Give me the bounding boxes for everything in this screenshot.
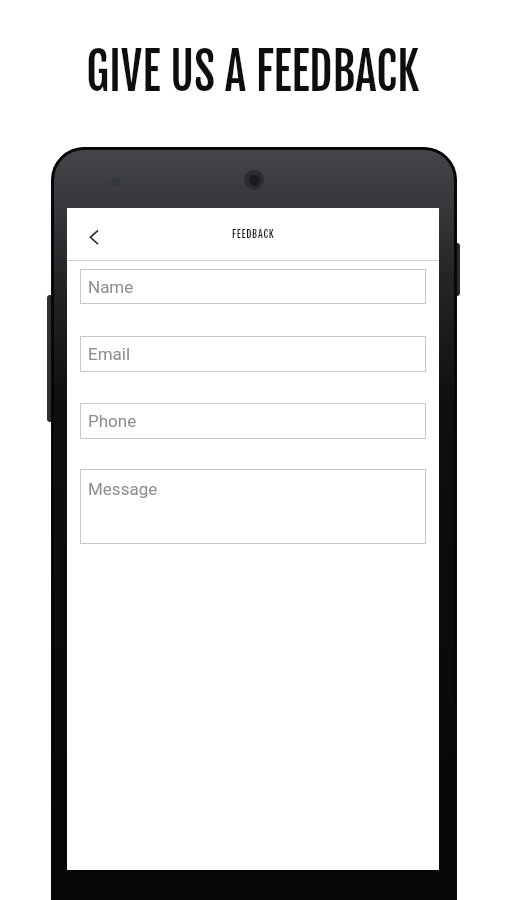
staticText: Email	[88, 344, 131, 364]
staticText: Phone	[88, 411, 137, 431]
button[interactable]: Email	[80, 336, 426, 372]
staticText: Message	[88, 479, 158, 499]
button[interactable]: Message	[80, 469, 426, 544]
button[interactable]: Phone	[80, 403, 426, 439]
staticText: FEEDBACK	[232, 228, 275, 241]
staticText: GIVE US A FEEDBACK	[86, 40, 420, 104]
button[interactable]	[75, 217, 115, 257]
staticText: Name	[88, 277, 134, 297]
button[interactable]: Name	[80, 269, 426, 304]
